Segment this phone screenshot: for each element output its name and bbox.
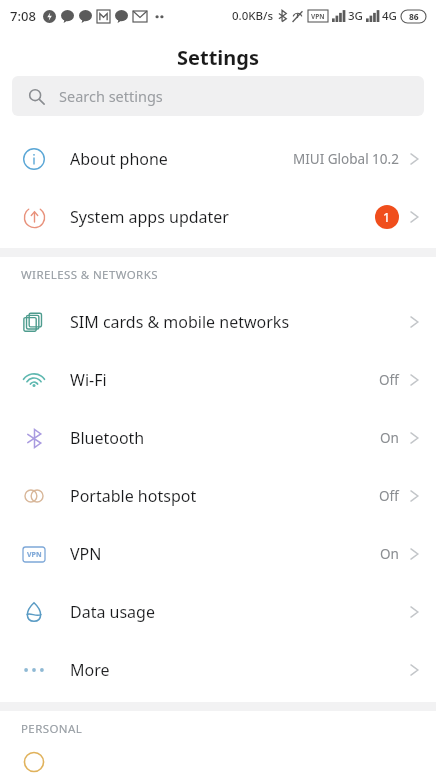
staticText: On — [380, 429, 399, 447]
staticText: Wi-Fi — [70, 369, 107, 391]
staticText: VPN — [70, 543, 102, 565]
button[interactable] — [0, 747, 436, 776]
staticText: On — [380, 545, 399, 563]
button[interactable]: Search settings — [12, 76, 424, 116]
staticText: Settings — [177, 44, 259, 71]
staticText: 1 — [383, 209, 391, 226]
staticText: System apps updater — [70, 206, 229, 228]
button[interactable]: About phone — [0, 130, 436, 188]
staticText: Data usage — [70, 601, 155, 623]
button[interactable]: Data usage — [0, 583, 436, 641]
staticText: SIM cards & mobile networks — [70, 311, 290, 333]
staticText: MIUI Global 10.2 — [293, 150, 399, 168]
staticText: Off — [379, 371, 399, 389]
button[interactable]: System apps updater — [0, 188, 436, 246]
button[interactable]: Bluetooth — [0, 409, 436, 467]
staticText: 4G — [382, 8, 397, 24]
button[interactable]: VPN — [0, 525, 436, 583]
staticText: VPN — [311, 12, 325, 21]
button[interactable]: More — [0, 641, 436, 699]
staticText: PERSONAL — [21, 721, 83, 737]
staticText: Search settings — [59, 86, 163, 106]
button[interactable]: Portable hotspot — [0, 467, 436, 525]
staticText: Portable hotspot — [70, 485, 197, 507]
staticText: 3G — [348, 8, 363, 24]
staticText: WIRELESS & NETWORKS — [21, 267, 158, 283]
staticText: More — [70, 659, 110, 681]
staticText: About phone — [70, 148, 168, 170]
button[interactable]: SIM cards & mobile networks — [0, 293, 436, 351]
staticText: VPN — [27, 550, 42, 560]
staticText: 86 — [409, 11, 419, 23]
staticText: Bluetooth — [70, 427, 145, 449]
staticText: Off — [379, 487, 399, 505]
staticText: 0.0KB/s — [232, 8, 274, 24]
button[interactable]: Wi-Fi — [0, 351, 436, 409]
staticText: 7:08 — [10, 7, 36, 25]
